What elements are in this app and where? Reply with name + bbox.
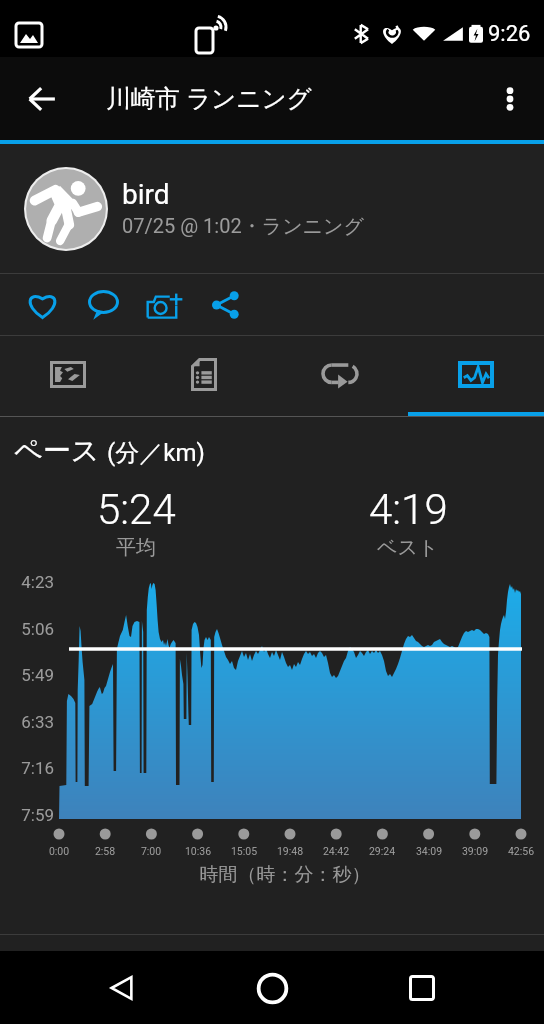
- staticText: 平均: [116, 535, 156, 560]
- staticText: 29:24: [352, 845, 412, 857]
- staticText: 2:58: [75, 845, 135, 857]
- staticText: 0:00: [29, 845, 89, 857]
- staticText: 4:19: [369, 485, 448, 534]
- staticText: 42:56: [491, 845, 544, 857]
- button[interactable]: bird: [0, 144, 544, 273]
- button[interactable]: Charts: [408, 336, 544, 412]
- staticText: 川崎市 ランニング: [106, 83, 312, 114]
- button[interactable]: Back: [94, 960, 150, 1016]
- staticText: 4:23: [10, 572, 54, 592]
- staticText: 19:48: [260, 845, 320, 857]
- button[interactable]: Comment: [78, 280, 128, 330]
- staticText: 7:00: [121, 845, 181, 857]
- staticText: 時間（時：分：秒）: [13, 863, 544, 887]
- button[interactable]: Details: [136, 336, 272, 412]
- staticText: 7:16: [10, 758, 54, 778]
- staticText: 39:09: [445, 845, 505, 857]
- staticText: bird: [122, 178, 170, 211]
- button[interactable]: Map: [0, 336, 136, 412]
- button[interactable]: Add photo: [139, 280, 189, 330]
- button[interactable]: Share: [200, 280, 250, 330]
- staticText: 5:06: [10, 619, 54, 639]
- staticText: 5:24: [97, 485, 176, 534]
- staticText: ベスト: [377, 535, 439, 560]
- button[interactable]: Recents: [394, 960, 450, 1016]
- staticText: 6:33: [10, 712, 54, 732]
- button[interactable]: Like: [17, 280, 67, 330]
- staticText: (分／km): [107, 438, 205, 468]
- staticText: 5:49: [10, 665, 54, 685]
- staticText: 10:36: [168, 845, 228, 857]
- button[interactable]: Splits: [272, 336, 408, 412]
- staticText: 24:42: [306, 845, 366, 857]
- staticText: 7:59: [10, 805, 54, 825]
- button[interactable]: More options: [486, 75, 534, 123]
- button[interactable]: Home: [244, 960, 300, 1016]
- staticText: 07/25 @ 1:02・ランニング: [122, 214, 365, 239]
- staticText: 34:09: [399, 845, 459, 857]
- button[interactable]: Back: [18, 75, 66, 123]
- staticText: 15:05: [214, 845, 274, 857]
- staticText: ペース: [14, 433, 107, 468]
- staticText: 9:26: [488, 21, 531, 47]
